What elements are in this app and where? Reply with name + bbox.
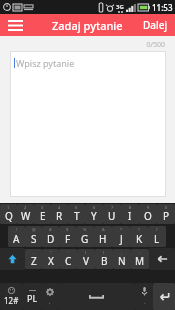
- staticText: O: [144, 209, 152, 223]
- staticText: ,: [49, 298, 51, 306]
- staticText: 11:53: [152, 2, 173, 13]
- staticText: C: [65, 254, 72, 268]
- button[interactable]: /: [148, 226, 166, 247]
- button[interactable]: 8: [121, 204, 139, 224]
- staticText: 1: [7, 205, 10, 210]
- button[interactable]: 7: [103, 204, 121, 224]
- button[interactable]: 6: [85, 204, 103, 224]
- staticText: F: [65, 232, 71, 246]
- staticText: ;: [121, 250, 123, 255]
- staticText: 3: [41, 205, 44, 210]
- button[interactable]: 4: [51, 204, 68, 224]
- staticText: 5: [75, 205, 78, 210]
- button[interactable]: 5: [68, 204, 85, 224]
- staticText: @: [32, 227, 36, 232]
- button[interactable]: Symbols: [0, 283, 23, 310]
- button[interactable]: Wpisz pytanie: [10, 51, 166, 197]
- button[interactable]: ?: [130, 226, 148, 247]
- button[interactable]: ": [42, 249, 59, 269]
- staticText: L: [154, 232, 160, 246]
- staticText: 12#: [4, 295, 19, 306]
- staticText: G: [81, 232, 89, 246]
- button[interactable]: 1: [0, 204, 17, 224]
- button[interactable]: -: [25, 249, 42, 269]
- button[interactable]: ;: [113, 249, 131, 269]
- button[interactable]: Menu: [0, 14, 30, 36]
- button[interactable]: Voice input: [135, 283, 153, 310]
- button[interactable]: 0: [157, 204, 175, 224]
- staticText: PL: [27, 292, 38, 304]
- staticText: 7: [111, 205, 114, 210]
- staticText: S: [31, 232, 37, 246]
- staticText: R: [56, 209, 63, 223]
- staticText: (: [85, 250, 87, 255]
- staticText: ': [68, 250, 69, 255]
- button[interactable]: 9: [139, 204, 157, 224]
- staticText: ?: [138, 227, 140, 232]
- staticText: -: [33, 250, 35, 255]
- staticText: 9: [147, 205, 150, 210]
- staticText: N: [118, 254, 126, 268]
- button[interactable]: @: [25, 226, 42, 247]
- staticText: Wpisz pytanie: [16, 57, 75, 69]
- button[interactable]: Settings: [42, 283, 58, 310]
- staticText: W: [21, 209, 31, 223]
- staticText: Y: [91, 209, 97, 223]
- button[interactable]: $: [59, 226, 76, 247]
- staticText: Q: [5, 209, 13, 223]
- staticText: .: [144, 298, 146, 306]
- staticText: Zadaj pytanie: [52, 18, 123, 33]
- staticText: Z: [31, 254, 37, 268]
- button[interactable]: PL: [23, 283, 42, 310]
- button[interactable]: (: [77, 249, 95, 269]
- staticText: A: [13, 232, 20, 246]
- staticText: :: [139, 250, 141, 255]
- staticText: /: [156, 227, 158, 232]
- button[interactable]: &: [94, 226, 112, 247]
- button[interactable]: Enter: [153, 283, 175, 310]
- button[interactable]: 2: [17, 204, 34, 224]
- staticText: V: [83, 254, 89, 268]
- staticText: 4: [58, 205, 61, 210]
- staticText: %: [83, 227, 87, 232]
- staticText: D: [47, 232, 55, 246]
- staticText: ": [50, 250, 52, 255]
- button[interactable]: ': [59, 249, 77, 269]
- staticText: P: [163, 209, 170, 223]
- staticText: 3G: [116, 3, 124, 11]
- button[interactable]: 3: [34, 204, 51, 224]
- staticText: M: [135, 254, 145, 268]
- staticText: E: [40, 209, 46, 223]
- staticText: T: [74, 209, 80, 223]
- button[interactable]: !: [8, 226, 25, 247]
- button[interactable]: Shift: [0, 248, 25, 270]
- button[interactable]: Backspace: [149, 248, 175, 270]
- staticText: X: [48, 254, 54, 268]
- staticText: #: [49, 227, 52, 232]
- staticText: $: [66, 227, 69, 232]
- staticText: J: [120, 232, 123, 246]
- button[interactable]: :: [131, 249, 149, 269]
- button[interactable]: ): [95, 249, 113, 269]
- staticText: 0/500: [0, 40, 165, 50]
- staticText: 0: [165, 205, 168, 210]
- staticText: ): [103, 250, 105, 255]
- button[interactable]: %: [76, 226, 94, 247]
- staticText: Dalej: [143, 18, 168, 32]
- staticText: I: [128, 209, 132, 223]
- staticText: 6: [93, 205, 96, 210]
- staticText: U: [108, 209, 116, 223]
- staticText: K: [136, 232, 143, 246]
- button[interactable]: Dalej: [136, 14, 175, 36]
- staticText: !: [16, 227, 18, 232]
- staticText: *: [120, 227, 123, 232]
- staticText: H: [99, 232, 107, 246]
- staticText: &: [102, 227, 105, 232]
- staticText: 2: [24, 205, 27, 210]
- button[interactable]: #: [42, 226, 59, 247]
- staticText: 8: [129, 205, 132, 210]
- button[interactable]: Space: [58, 283, 135, 310]
- button[interactable]: *: [112, 226, 130, 247]
- staticText: B: [101, 254, 108, 268]
